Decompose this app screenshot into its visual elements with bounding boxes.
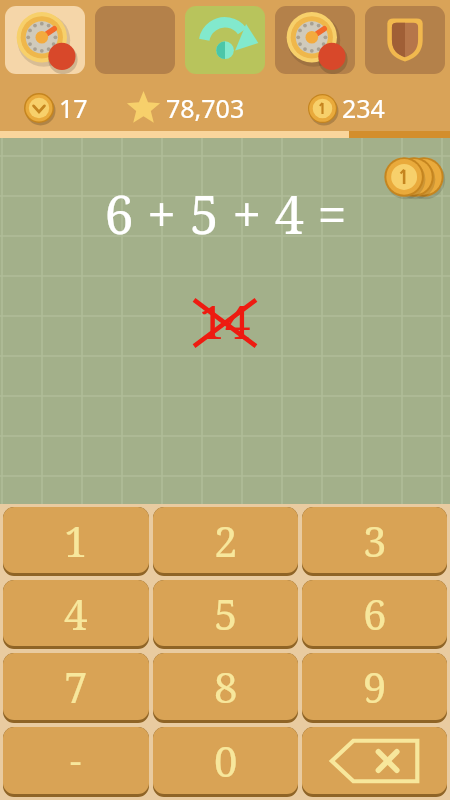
- staticText: 4: [64, 585, 88, 642]
- button[interactable]: Timer power-up times two: [5, 6, 85, 74]
- button[interactable]: 8: [153, 653, 298, 723]
- button[interactable]: Skip power-up: [185, 6, 265, 74]
- staticText: 8: [214, 658, 238, 715]
- staticText: 14: [199, 290, 251, 353]
- button[interactable]: Shield power-up: [365, 6, 445, 74]
- button[interactable]: 6: [302, 580, 447, 649]
- button[interactable]: 234: [308, 91, 385, 125]
- staticText: 7: [64, 658, 88, 715]
- button[interactable]: 78,703: [126, 90, 245, 125]
- staticText: 78,703: [166, 91, 245, 125]
- staticText: 5: [214, 585, 238, 642]
- button[interactable]: 7: [3, 653, 149, 723]
- button[interactable]: -: [3, 727, 149, 797]
- button[interactable]: 4: [3, 580, 149, 649]
- button[interactable]: 1: [3, 507, 149, 576]
- staticText: 1: [64, 512, 88, 569]
- staticText: 234: [342, 91, 385, 125]
- staticText: 9: [363, 658, 387, 715]
- button[interactable]: Empty power-up slot: [95, 6, 175, 74]
- staticText: 17: [59, 91, 88, 125]
- button[interactable]: Backspace: [302, 727, 447, 797]
- staticText: -: [70, 736, 82, 785]
- staticText: 6 + 5 + 4 =: [104, 178, 347, 249]
- button[interactable]: 5: [153, 580, 298, 649]
- button[interactable]: 0: [153, 727, 298, 797]
- button[interactable]: 9: [302, 653, 447, 723]
- button[interactable]: 3: [302, 507, 447, 576]
- button[interactable]: 2: [153, 507, 298, 576]
- button[interactable]: Timer power-up times two: [275, 6, 355, 74]
- staticText: 2: [214, 512, 238, 569]
- staticText: 0: [214, 732, 238, 789]
- button[interactable]: 17: [24, 91, 88, 125]
- staticText: 6: [363, 585, 387, 642]
- staticText: 3: [363, 512, 387, 569]
